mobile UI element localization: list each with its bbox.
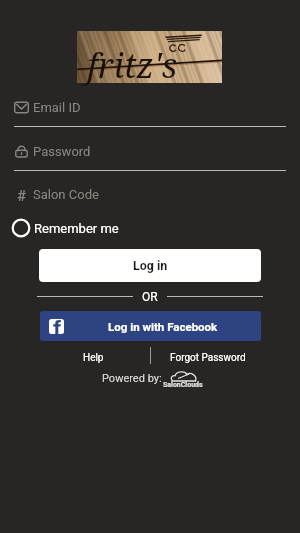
button[interactable]: Password (0, 138, 300, 176)
staticText: OR (142, 290, 158, 304)
staticText: Help (83, 352, 104, 364)
button[interactable]: Log in with Facebook (40, 311, 261, 341)
staticText: Salon Code (33, 187, 99, 202)
button[interactable]: # (0, 181, 300, 219)
button[interactable]: Email ID (0, 94, 300, 132)
button[interactable]: Log in (39, 249, 261, 282)
staticText: fritz's (87, 42, 178, 88)
staticText: Remember me (34, 221, 119, 236)
staticText: Log in (133, 258, 168, 273)
staticText: Email ID (33, 100, 81, 115)
other: Facebook (49, 319, 64, 334)
staticText: Forgot Password (170, 352, 246, 364)
staticText: Log in with Facebook (108, 320, 218, 333)
staticText: SalonClouds (163, 381, 203, 389)
staticText: Password (33, 144, 91, 159)
staticText: Powered by: (102, 372, 162, 385)
button[interactable]: Help (61, 348, 125, 368)
staticText: # (17, 187, 27, 202)
button[interactable]: Forgot Password (158, 348, 258, 368)
button[interactable]: Remember me (11, 215, 119, 241)
